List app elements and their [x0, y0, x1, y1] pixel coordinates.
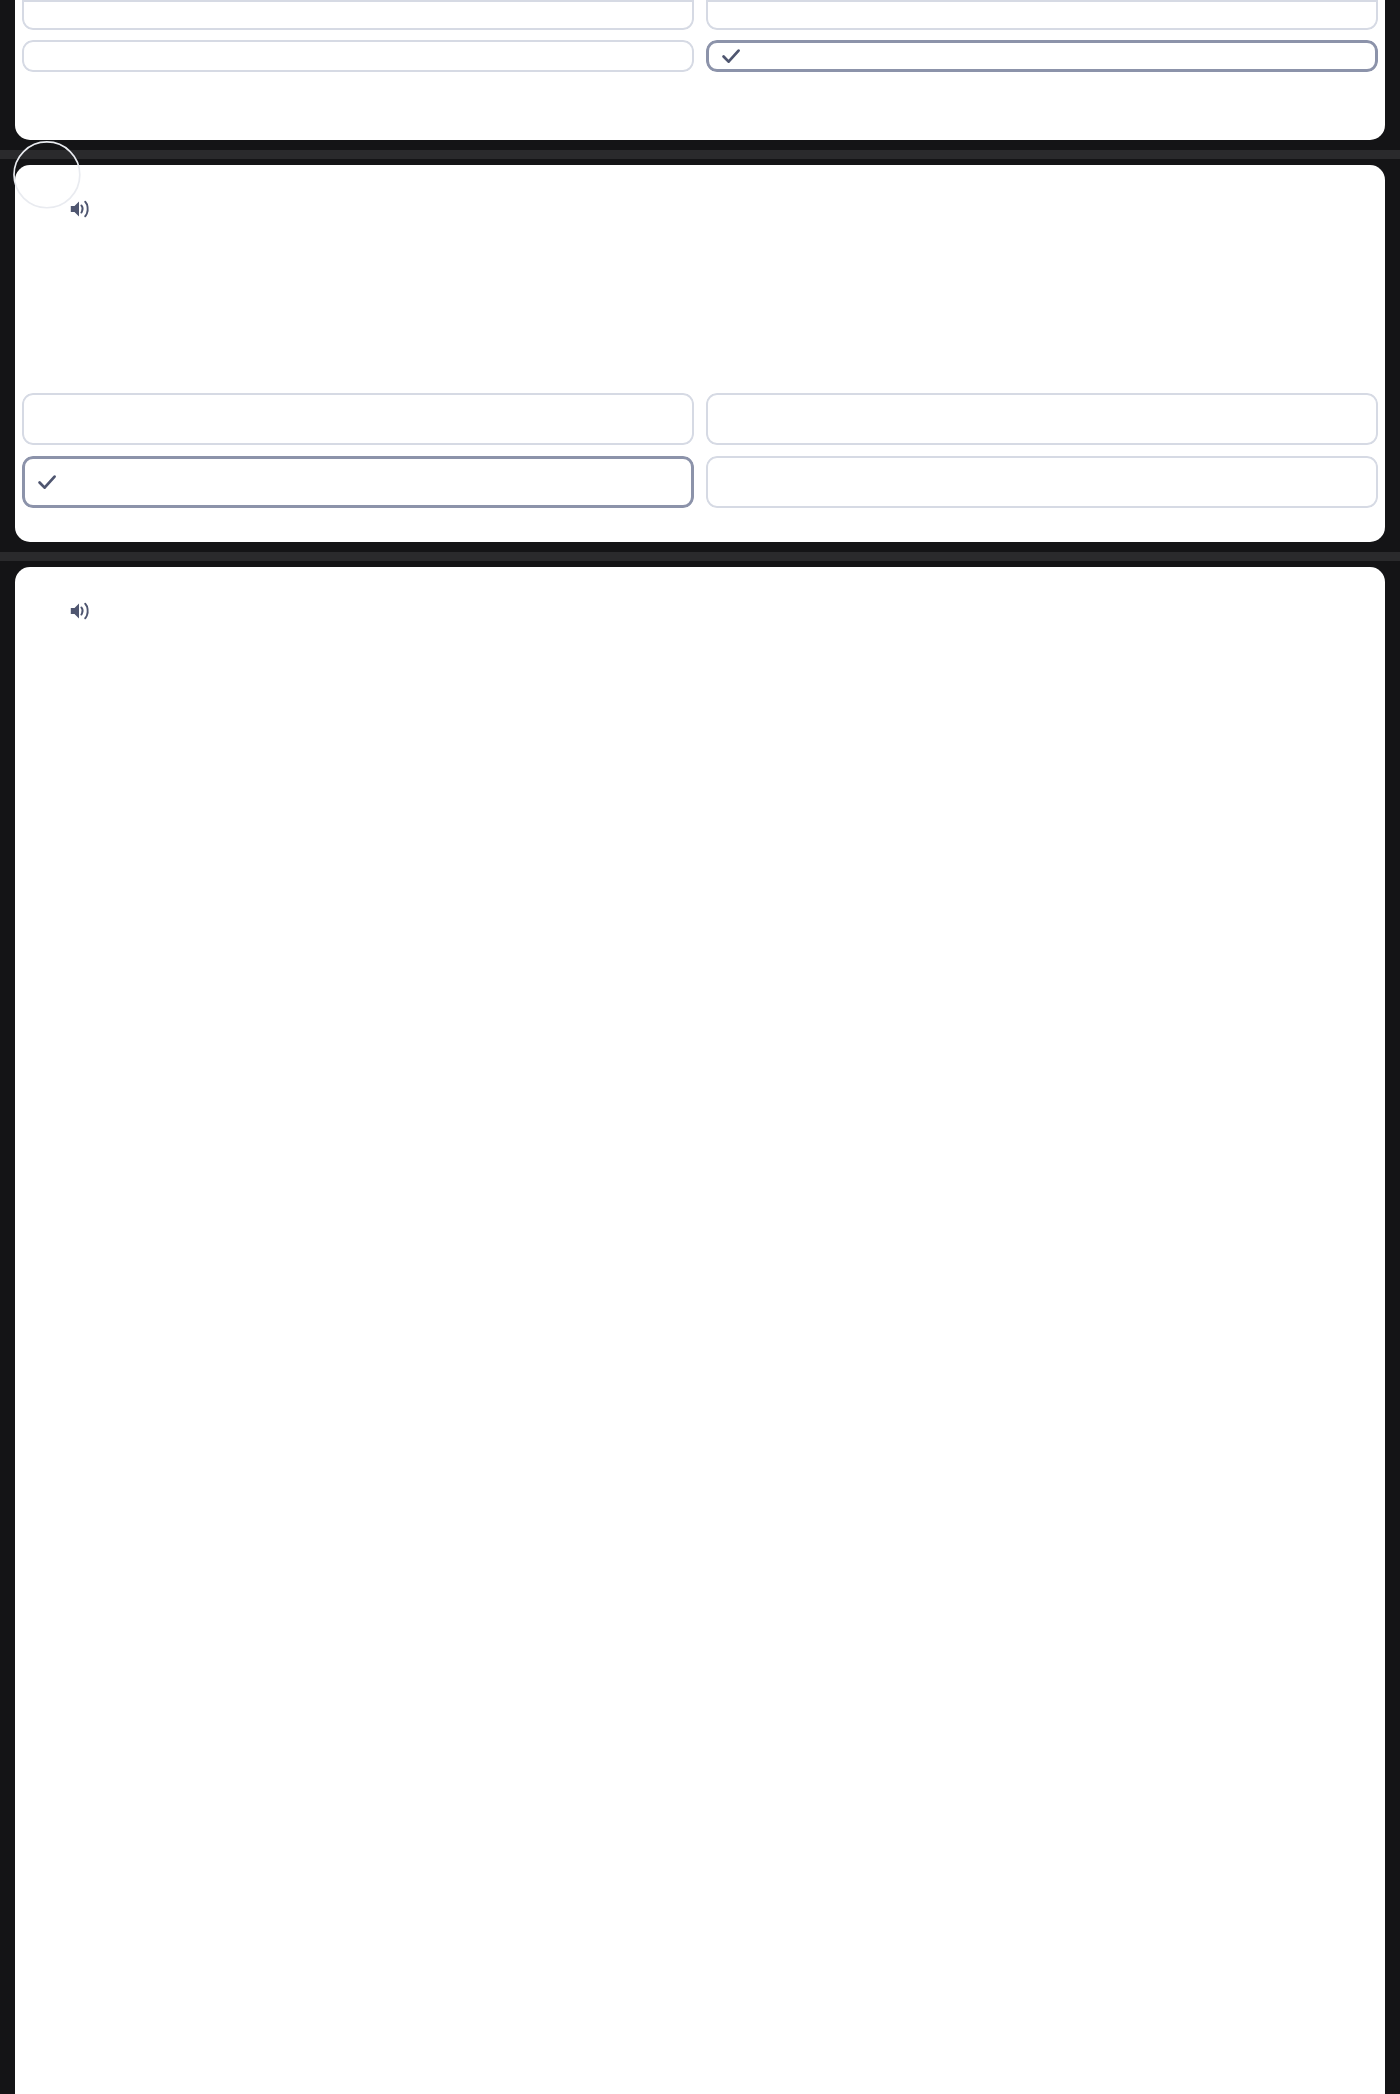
button[interactable]: Option 3	[22, 456, 694, 508]
button[interactable]: Play audio	[67, 598, 93, 624]
button[interactable]: Option 1	[22, 393, 694, 445]
button[interactable]: Option 4	[706, 40, 1378, 72]
button[interactable]: Option 3	[22, 40, 694, 72]
button[interactable]: Option 2	[706, 0, 1378, 30]
button[interactable]: Option 4	[706, 456, 1378, 508]
button[interactable]: Play audio	[67, 196, 93, 222]
button[interactable]: Option 1	[22, 0, 694, 30]
button[interactable]: Option 2	[706, 393, 1378, 445]
